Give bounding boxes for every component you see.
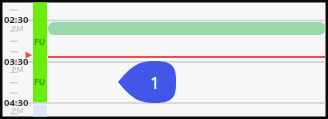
- button[interactable]: All day event: [48, 22, 325, 35]
- button[interactable]: All day event: [0, 0, 328, 119]
- button[interactable]: 1 more event: [117, 61, 178, 104]
- button[interactable]: Day column FU: [33, 3, 47, 103]
